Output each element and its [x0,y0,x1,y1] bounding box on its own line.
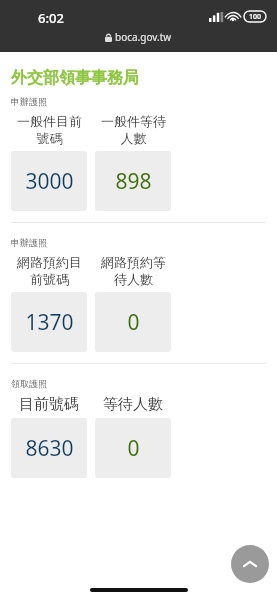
button[interactable]: 1370 [11,292,87,352]
button[interactable]: 3000 [11,151,87,211]
staticText: 網路預約等 待人數 [101,254,166,288]
staticText: 0 [127,434,140,463]
staticText: 一般件等待 人數 [101,113,166,147]
button[interactable]: 0 [95,418,171,478]
staticText: 領取護照 [11,378,47,389]
staticText: 目前號碼 [19,395,79,414]
staticText: boca.gov.tw [115,30,172,44]
button[interactable]: 898 [95,151,171,211]
button[interactable]: 8630 [11,418,87,478]
staticText: 外交部領事事務局 [11,68,139,88]
button[interactable]: 0 [95,292,171,352]
staticText: 一般件目前 號碼 [17,113,82,147]
staticText: 1370 [25,308,74,337]
staticText: 0 [127,308,140,337]
staticText: 等待人數 [103,395,163,414]
staticText: 100 [249,12,262,22]
staticText: 898 [115,167,152,196]
button[interactable]: Scroll to top [231,545,269,583]
staticText: 3000 [25,167,74,196]
staticText: 8630 [25,434,74,463]
staticText: 申辦護照 [11,96,47,107]
staticText: 6:02 [38,9,64,27]
staticText: 網路預約目 前號碼 [17,254,82,288]
staticText: 申辦護照 [11,237,47,248]
